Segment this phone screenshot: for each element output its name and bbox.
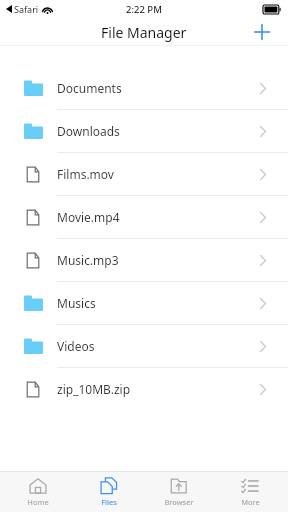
button[interactable]: Files <box>77 472 141 512</box>
button[interactable]: Add <box>250 20 274 44</box>
staticText: Films.mov <box>57 166 114 182</box>
staticText: Safari <box>14 3 39 15</box>
staticText: Browser <box>164 497 194 507</box>
staticText: Home <box>27 497 49 507</box>
staticText: Files <box>101 497 117 507</box>
staticText: Movie.mp4 <box>57 209 120 225</box>
button[interactable]: Documents <box>0 67 288 109</box>
staticText: Musics <box>57 295 96 311</box>
button[interactable]: Music.mp3 <box>0 239 288 281</box>
button[interactable]: Films.mov <box>0 153 288 195</box>
staticText: 2:22 PM <box>126 3 162 16</box>
staticText: zip_10MB.zip <box>57 381 131 397</box>
button[interactable]: Movie.mp4 <box>0 196 288 238</box>
button[interactable]: Home <box>6 472 70 512</box>
button[interactable]: Downloads <box>0 110 288 152</box>
button[interactable]: Musics <box>0 282 288 324</box>
staticText: Documents <box>57 80 122 96</box>
staticText: Downloads <box>57 123 120 139</box>
staticText: More <box>241 497 260 507</box>
button[interactable]: More <box>218 472 282 512</box>
button[interactable]: Browser <box>147 472 211 512</box>
button[interactable]: zip_10MB.zip <box>0 368 288 410</box>
staticText: File Manager <box>101 23 187 42</box>
staticText: Videos <box>57 338 95 354</box>
button[interactable]: Videos <box>0 325 288 367</box>
staticText: Music.mp3 <box>57 252 119 268</box>
